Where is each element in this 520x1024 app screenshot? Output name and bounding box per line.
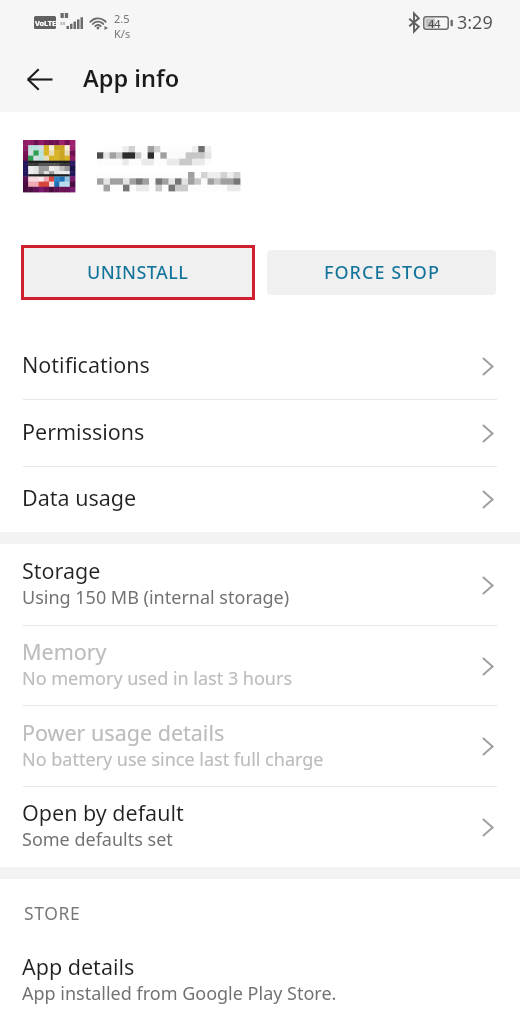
staticText: VoLTE bbox=[35, 18, 56, 28]
staticText: STORE bbox=[24, 901, 81, 925]
staticText: App info bbox=[83, 62, 180, 94]
button[interactable]: Power usage details bbox=[0, 706, 520, 787]
button[interactable]: FORCE STOP bbox=[267, 250, 496, 295]
button[interactable]: Back bbox=[16, 55, 64, 103]
staticText: 2.5 bbox=[114, 11, 130, 26]
staticText: UNINSTALL bbox=[87, 260, 189, 285]
staticText: No memory used in last 3 hours bbox=[22, 666, 293, 691]
button[interactable]: Storage bbox=[0, 544, 520, 626]
staticText: No battery use since last full charge bbox=[22, 747, 324, 772]
button[interactable]: App details bbox=[0, 940, 520, 1022]
staticText: Permissions bbox=[22, 417, 145, 446]
staticText: Using 150 MB (internal storage) bbox=[22, 585, 290, 610]
staticText: Open by default bbox=[22, 798, 184, 827]
staticText: Memory bbox=[22, 637, 107, 666]
staticText: App details bbox=[22, 952, 135, 981]
button[interactable]: Data usage bbox=[0, 467, 520, 532]
button[interactable]: Open by default bbox=[0, 787, 520, 867]
staticText: App installed from Google Play Store. bbox=[22, 981, 337, 1006]
staticText: K/s bbox=[114, 26, 131, 41]
button[interactable]: Memory bbox=[0, 626, 520, 706]
staticText: Data usage bbox=[22, 483, 137, 512]
staticText: 44 bbox=[428, 16, 441, 30]
staticText: 3:29 bbox=[457, 10, 493, 35]
staticText: Notifications bbox=[22, 350, 150, 379]
staticText: Some defaults set bbox=[22, 827, 173, 852]
staticText: Storage bbox=[22, 556, 101, 585]
button[interactable]: Permissions bbox=[0, 400, 520, 467]
button[interactable]: Notifications bbox=[0, 333, 520, 400]
staticText: Power usage details bbox=[22, 718, 225, 747]
staticText: FORCE STOP bbox=[324, 260, 440, 285]
button[interactable]: UNINSTALL bbox=[24, 248, 252, 297]
